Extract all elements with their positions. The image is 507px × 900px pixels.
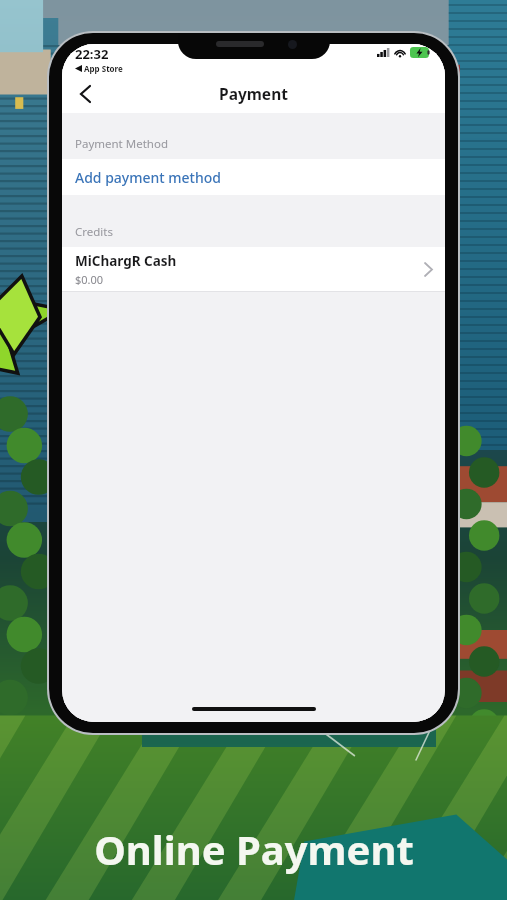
staticText: Online Payment <box>94 822 414 876</box>
staticText: MiChargR Cash <box>75 252 177 270</box>
staticText: Payment Method <box>75 136 168 152</box>
staticText: Add payment method <box>75 168 221 187</box>
staticText: $0.00 <box>75 272 104 287</box>
button[interactable]: MiChargR Cash <box>62 247 445 291</box>
button[interactable]: Back <box>68 77 102 111</box>
button[interactable]: Add payment method <box>62 159 445 195</box>
staticText: Payment <box>219 83 288 104</box>
staticText: Credits <box>75 224 113 240</box>
staticText: App Store <box>84 63 123 74</box>
staticText: 22:32 <box>75 45 109 63</box>
